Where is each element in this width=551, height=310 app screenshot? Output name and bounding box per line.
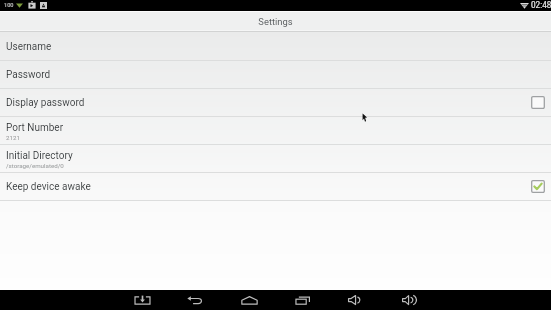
staticText: Port Number: [6, 122, 64, 134]
staticText: Password: [6, 69, 51, 81]
button[interactable]: Recents: [290, 290, 316, 307]
button[interactable]: Volume down: [342, 290, 368, 307]
staticText: Display password: [6, 97, 85, 109]
button[interactable]: Home: [236, 290, 262, 307]
button[interactable]: Initial Directory: [0, 144, 551, 172]
staticText: 02:48: [531, 0, 551, 10]
staticText: Initial Directory: [6, 150, 73, 162]
button[interactable]: Display password: [0, 88, 551, 116]
button[interactable]: Keep device awake: [0, 172, 551, 200]
staticText: Username: [6, 41, 52, 53]
staticText: Keep device awake: [6, 181, 91, 193]
staticText: 2121: [6, 134, 20, 141]
button[interactable]: Password: [0, 60, 551, 88]
staticText: /storage/emulated/0: [6, 162, 64, 169]
button[interactable]: Hide keyboard: [129, 290, 155, 307]
staticText: 100: [4, 2, 14, 9]
button[interactable]: Back: [182, 290, 208, 307]
button[interactable]: Port Number: [0, 116, 551, 144]
button[interactable]: Volume up: [396, 290, 422, 307]
staticText: Settings: [258, 16, 293, 27]
button[interactable]: Username: [0, 32, 551, 60]
